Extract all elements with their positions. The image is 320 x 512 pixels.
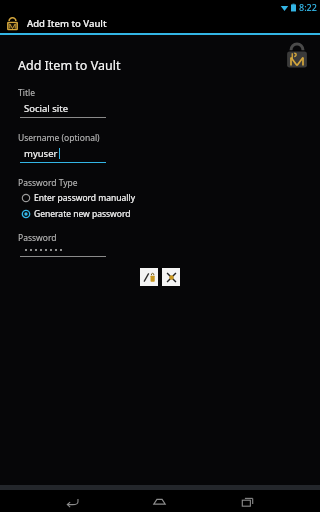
button[interactable]: Generate password	[140, 268, 158, 286]
button[interactable]: Home	[144, 490, 174, 512]
staticText: Generate new password	[34, 208, 131, 220]
staticText: Add Item to Vault	[18, 57, 121, 74]
button[interactable]: myuser	[20, 147, 106, 163]
button[interactable]: Recent apps	[232, 490, 262, 512]
staticText: myuser	[24, 147, 58, 160]
staticText: Password	[18, 232, 57, 244]
button[interactable]: Clear	[162, 268, 180, 286]
button[interactable]: Back	[57, 490, 87, 512]
button[interactable]: Generate new password	[22, 207, 131, 221]
staticText: Username (optional)	[18, 132, 100, 144]
staticText: Add Item to Vault	[27, 17, 107, 30]
staticText: Enter password manually	[34, 192, 136, 204]
staticText: Social site	[24, 102, 69, 115]
staticText: 8:22	[299, 1, 317, 13]
staticText: Title	[18, 87, 35, 99]
staticText: Password Type	[18, 177, 78, 189]
button[interactable]: Enter password manually	[22, 191, 136, 205]
button[interactable]	[20, 249, 106, 257]
button[interactable]: Social site	[20, 102, 106, 118]
other: Vault logo	[282, 40, 312, 70]
